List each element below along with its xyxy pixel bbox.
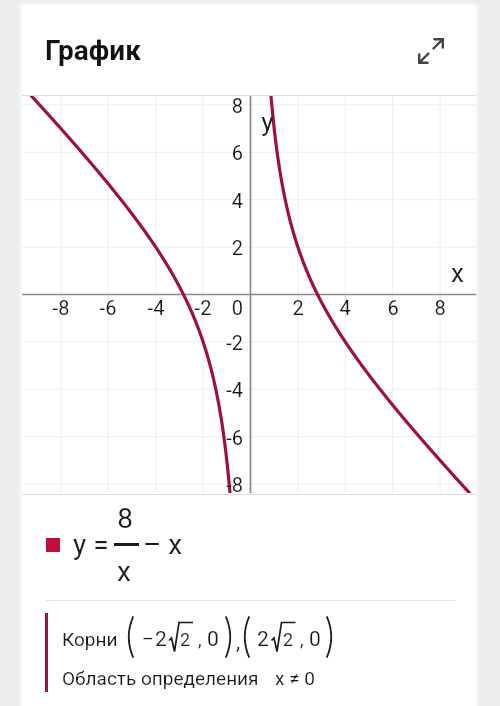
staticText: 8 <box>110 502 140 535</box>
staticText: -8 <box>41 296 81 319</box>
staticText: 2 <box>257 627 269 652</box>
button[interactable]: График <box>22 5 476 95</box>
staticText: -6 <box>88 296 128 319</box>
staticText: График <box>45 34 141 67</box>
staticText: Область определения <box>62 667 259 689</box>
staticText: , <box>198 629 202 650</box>
staticText: -2 <box>198 331 243 354</box>
staticText: 0 <box>213 296 243 319</box>
staticText: 2 <box>198 236 243 259</box>
staticText: y = <box>73 528 109 561</box>
staticText: 4 <box>325 296 365 319</box>
staticText: -6 <box>198 426 243 449</box>
staticText: , <box>300 629 304 650</box>
staticText: 2 <box>180 629 191 650</box>
staticText: -4 <box>198 378 243 401</box>
staticText: 2 <box>155 627 167 652</box>
button[interactable]: y = 8 / x - x <box>22 496 476 599</box>
staticText: 2 <box>283 629 294 650</box>
staticText: y <box>261 107 274 137</box>
staticText: 2 <box>278 296 318 319</box>
staticText: 0 <box>309 627 321 652</box>
staticText: 0 <box>207 627 219 652</box>
staticText: Корни <box>62 628 118 650</box>
staticText: 8 <box>198 94 243 117</box>
staticText: -4 <box>136 296 176 319</box>
staticText: 8 <box>420 296 460 319</box>
staticText: 4 <box>198 189 243 212</box>
staticText: x <box>109 555 139 588</box>
staticText: 6 <box>198 141 243 164</box>
button[interactable]: Expand graph to full screen <box>408 28 454 74</box>
staticText: – <box>142 628 154 649</box>
staticText: – x <box>143 528 183 561</box>
staticText: , <box>236 630 241 655</box>
staticText: x ≠ 0 <box>275 667 315 689</box>
staticText: x <box>451 258 464 288</box>
button[interactable]: Plot of y = 8/x - x <box>22 96 476 493</box>
staticText: -8 <box>198 473 243 496</box>
staticText: 6 <box>373 296 413 319</box>
staticText: -2 <box>183 296 223 319</box>
